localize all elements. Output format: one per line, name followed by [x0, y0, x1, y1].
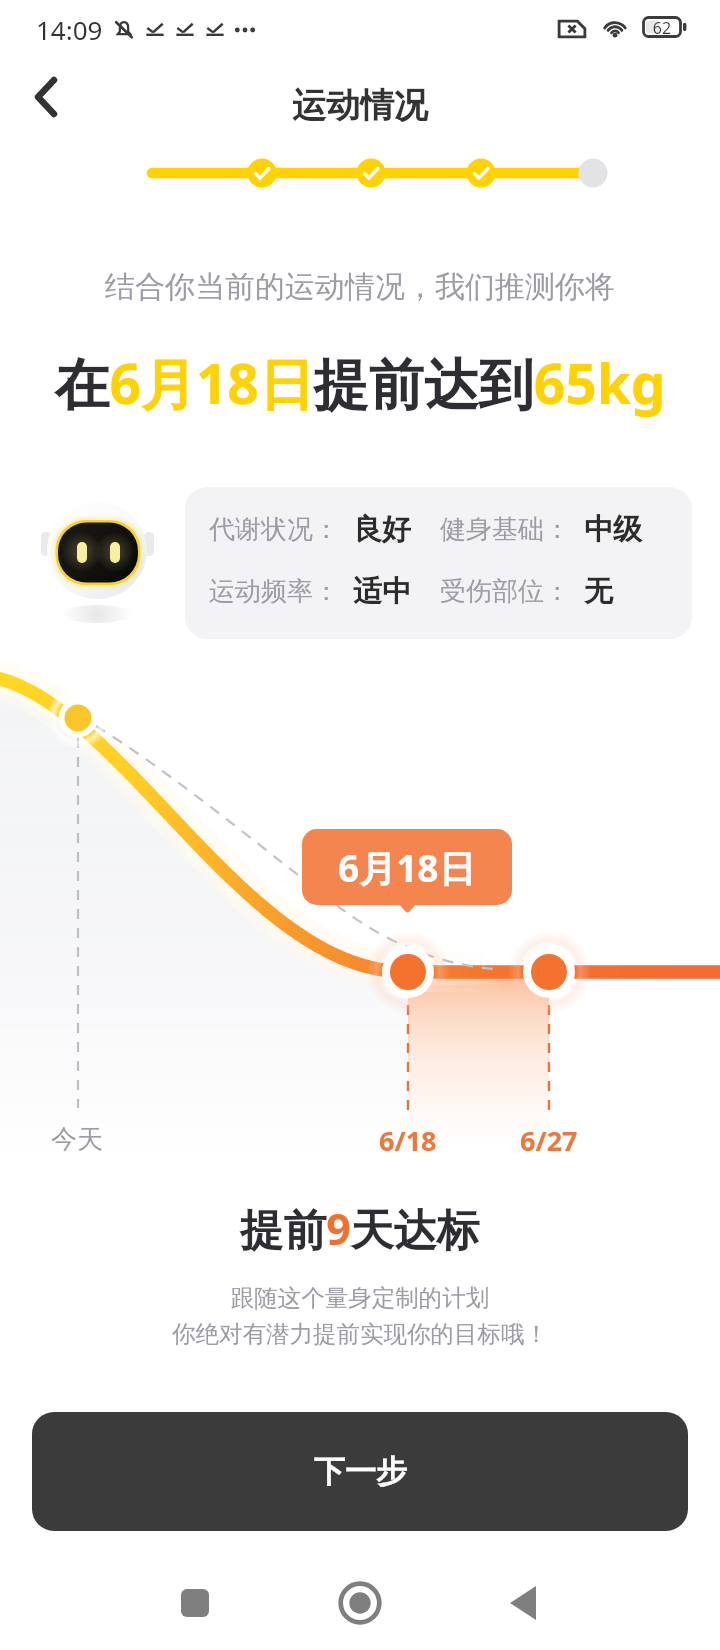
staticText: 提前9天达标	[0, 1199, 720, 1258]
staticText: 适中	[353, 573, 411, 610]
staticText: 运动情况	[0, 84, 720, 127]
button[interactable]: 下一步	[32, 1412, 688, 1531]
staticText: 健身基础：	[440, 513, 570, 546]
button[interactable]: Back	[18, 69, 74, 125]
staticText: 6/27	[520, 1122, 578, 1159]
staticText: 代谢状况：	[209, 513, 339, 546]
staticText: 结合你当前的运动情况，我们推测你将	[0, 268, 720, 306]
staticText: 跟随这个量身定制的计划 你绝对有潜力提前实现你的目标哦！	[0, 1283, 720, 1349]
staticText: 运动频率：	[209, 575, 339, 608]
button[interactable]: Home	[320, 1563, 400, 1643]
staticText: 62	[652, 17, 672, 39]
staticText: 中级	[584, 511, 642, 548]
button[interactable]: Back	[483, 1563, 563, 1643]
staticText: 今天	[51, 1123, 103, 1156]
staticText: 6/18	[379, 1122, 437, 1159]
staticText: 良好	[353, 511, 411, 548]
staticText: 受伤部位：	[440, 575, 570, 608]
staticText: 6月18日	[338, 842, 476, 893]
staticText: 下一步	[314, 1452, 407, 1491]
staticText: 无	[584, 573, 613, 610]
staticText: 14:09	[36, 12, 103, 47]
button[interactable]: Recent apps	[155, 1563, 235, 1643]
staticText: 在6月18日提前达到65kg	[0, 345, 720, 420]
